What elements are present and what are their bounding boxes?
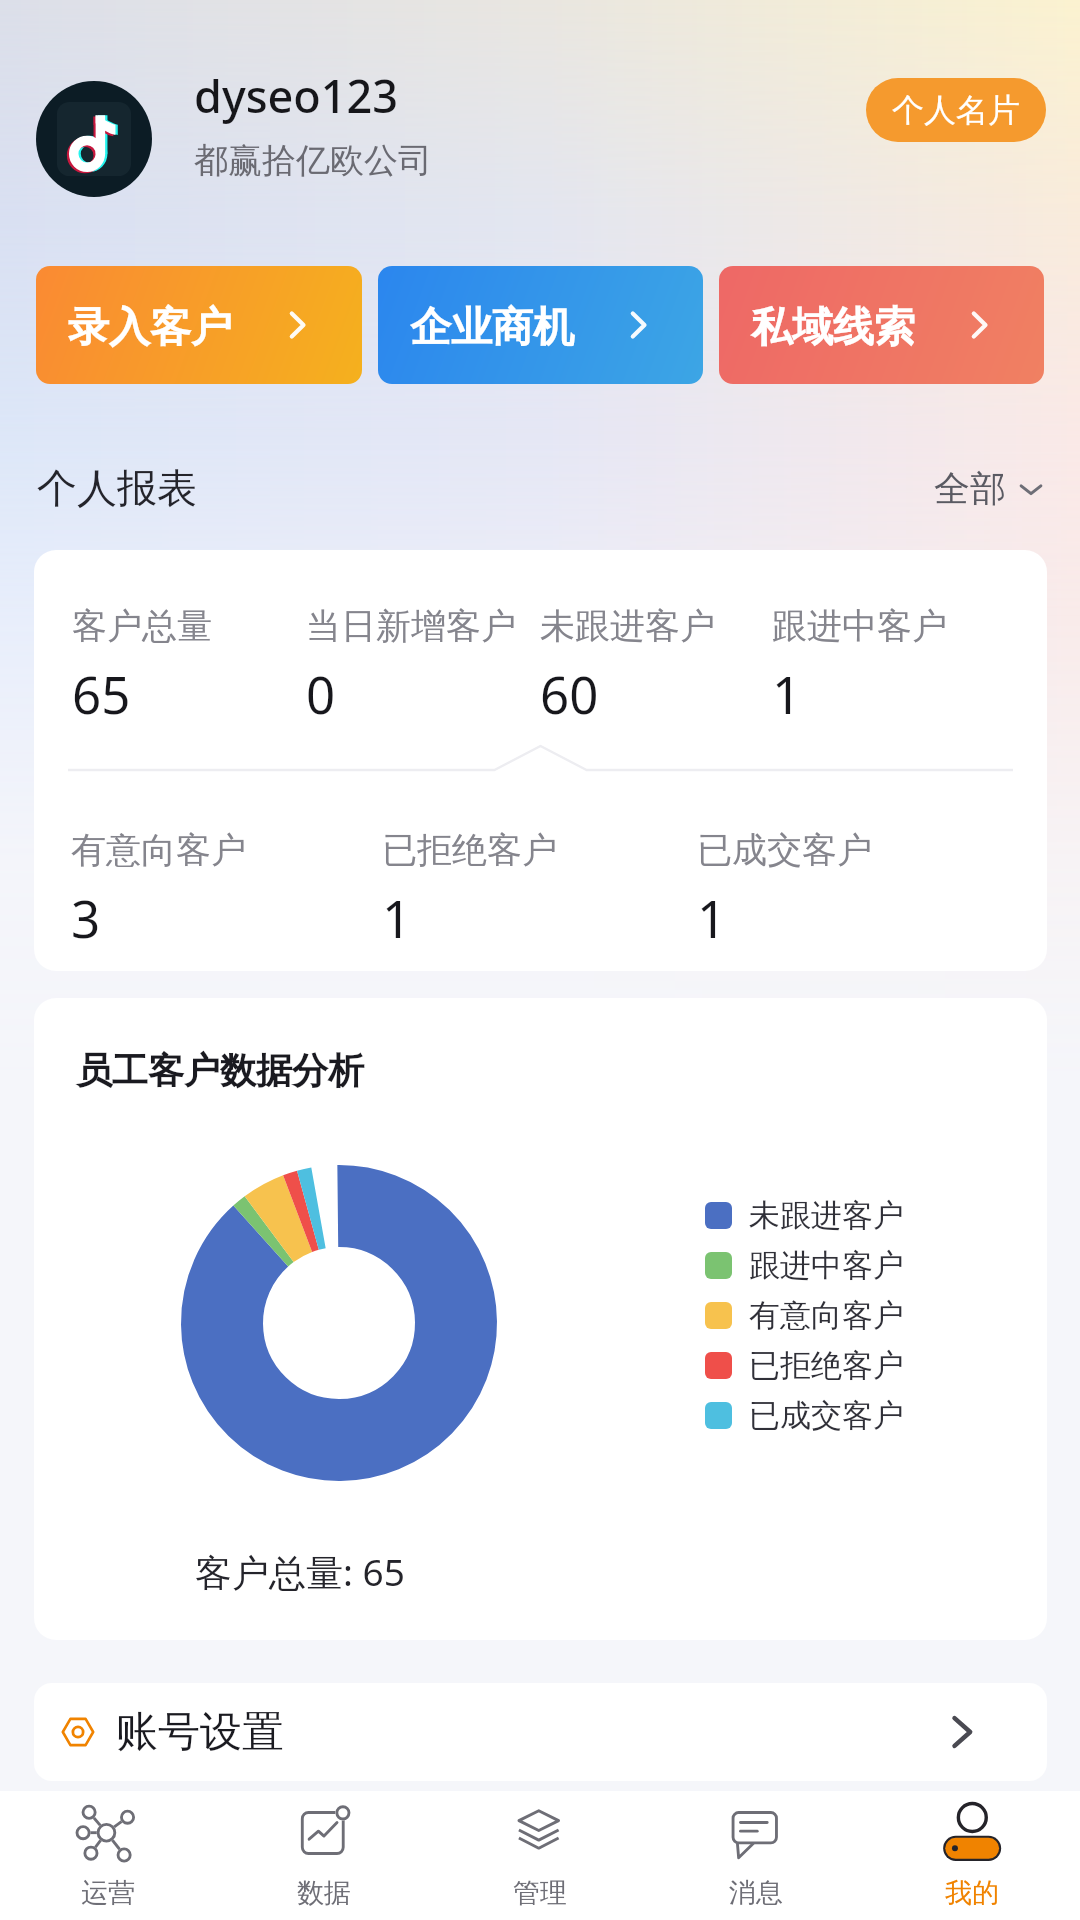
button[interactable]: 未跟进客户 [540,604,715,728]
button[interactable]: 全部 [928,460,1050,517]
staticText: 我的 [945,1876,999,1910]
staticText: 3 [71,883,101,952]
staticText: 个人名片 [892,90,1020,130]
staticText: 有意向客户 [749,1296,904,1335]
staticText: 运营 [81,1876,135,1910]
button[interactable]: Profile avatar [36,81,152,197]
button[interactable]: 消息 [648,1791,864,1920]
staticText: 已成交客户 [749,1396,904,1435]
button[interactable]: 管理 [432,1791,648,1920]
button[interactable]: 跟进中客户 [772,604,947,728]
staticText: 未跟进客户 [749,1196,904,1235]
staticText: 跟进中客户 [749,1246,904,1285]
staticText: 数据 [297,1876,351,1910]
staticText: 有意向客户 [71,828,246,872]
staticText: 全部 [934,466,1006,511]
staticText: 1 [697,883,727,952]
staticText: 录入客户 [68,302,232,354]
button[interactable]: 已成交客户 [697,828,872,952]
staticText: 管理 [513,1876,567,1910]
button[interactable]: 录入客户 [36,266,362,384]
staticText: 1 [772,659,802,728]
button[interactable]: 企业商机 [378,266,703,384]
button[interactable]: 已成交客户 [705,1396,904,1435]
staticText: 账号设置 [116,1706,284,1759]
button[interactable]: 未跟进客户 [705,1196,904,1235]
button[interactable]: 已拒绝客户 [382,828,557,952]
staticText: 60 [540,659,599,728]
staticText: 客户总量 [72,604,212,648]
staticText: 已成交客户 [697,828,872,872]
staticText: 跟进中客户 [772,604,947,648]
staticText: 1 [382,883,412,952]
button[interactable]: 跟进中客户 [705,1246,904,1285]
staticText: 私域线索 [751,302,915,354]
button[interactable]: 数据 [216,1791,432,1920]
button[interactable]: 已拒绝客户 [705,1346,904,1385]
staticText: 个人报表 [37,463,197,513]
staticText: 已拒绝客户 [749,1346,904,1385]
staticText: 员工客户数据分析 [76,1048,364,1093]
staticText: 当日新增客户 [306,604,516,648]
staticText: dyseo123 [194,65,399,126]
button[interactable]: 运营 [0,1791,216,1920]
button[interactable]: 有意向客户 [705,1296,904,1335]
staticText: 消息 [729,1876,783,1910]
staticText: 0 [306,659,336,728]
button[interactable]: 有意向客户 [71,828,246,952]
staticText: 65 [72,659,131,728]
button[interactable]: 个人名片 [866,78,1046,142]
staticText: 客户总量: 65 [195,1546,405,1597]
button[interactable]: 私域线索 [719,266,1044,384]
staticText: 都赢拾亿欧公司 [194,139,432,182]
staticText: 未跟进客户 [540,604,715,648]
button[interactable]: 客户总量 [72,604,212,728]
button[interactable]: 账号设置 [34,1683,1047,1781]
button[interactable]: 当日新增客户 [306,604,516,728]
button[interactable]: 我的 [864,1791,1080,1920]
staticText: 已拒绝客户 [382,828,557,872]
staticText: 企业商机 [410,302,574,354]
